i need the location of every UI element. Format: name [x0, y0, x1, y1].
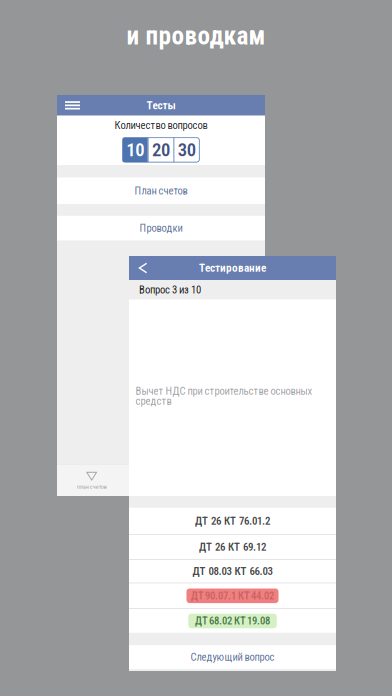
staticText: Вычет НДС при строительстве основных: [135, 385, 312, 397]
button[interactable]: ДТ 26 КТ 76.01.2: [129, 508, 336, 534]
button[interactable]: Back: [129, 256, 157, 280]
staticText: ДТ 90.07.1 КТ 44.02: [191, 589, 274, 602]
staticText: План счетов: [134, 184, 187, 197]
button[interactable]: 20: [148, 138, 173, 162]
staticText: 20: [152, 139, 170, 161]
staticText: Количество вопросов: [114, 119, 207, 132]
staticText: Тесты: [146, 99, 175, 112]
button[interactable]: ДТ 08.03 КТ 66.03: [129, 560, 336, 583]
button[interactable]: ДТ 90.07.1 КТ 44.02: [129, 583, 336, 608]
staticText: Вопрос 3 из 10: [139, 283, 201, 296]
staticText: 10: [126, 139, 144, 161]
button[interactable]: план счетов: [57, 469, 126, 492]
staticText: Тестирование: [199, 261, 266, 275]
staticText: и проводкам: [126, 21, 265, 51]
button[interactable]: 30: [174, 138, 199, 162]
button[interactable]: Menu: [57, 95, 88, 116]
staticText: ДТ 68.02 КТ 19.08: [195, 615, 270, 627]
button[interactable]: ДТ 26 КТ 69.12: [129, 535, 336, 559]
button[interactable]: План счетов: [57, 177, 265, 204]
staticText: средств: [135, 395, 171, 407]
button[interactable]: 10: [123, 138, 148, 162]
staticText: Проводки: [139, 222, 182, 234]
staticText: план счетов: [77, 483, 107, 490]
staticText: Следующий вопрос: [190, 651, 274, 663]
staticText: ДТ 08.03 КТ 66.03: [192, 565, 272, 578]
staticText: ДТ 26 КТ 69.12: [199, 541, 266, 553]
staticText: 30: [178, 139, 196, 161]
button[interactable]: ДТ 68.02 КТ 19.08: [129, 609, 336, 633]
button[interactable]: Следующий вопрос: [129, 645, 336, 669]
staticText: ДТ 26 КТ 76.01.2: [195, 515, 270, 527]
button[interactable]: Проводки: [57, 216, 265, 240]
